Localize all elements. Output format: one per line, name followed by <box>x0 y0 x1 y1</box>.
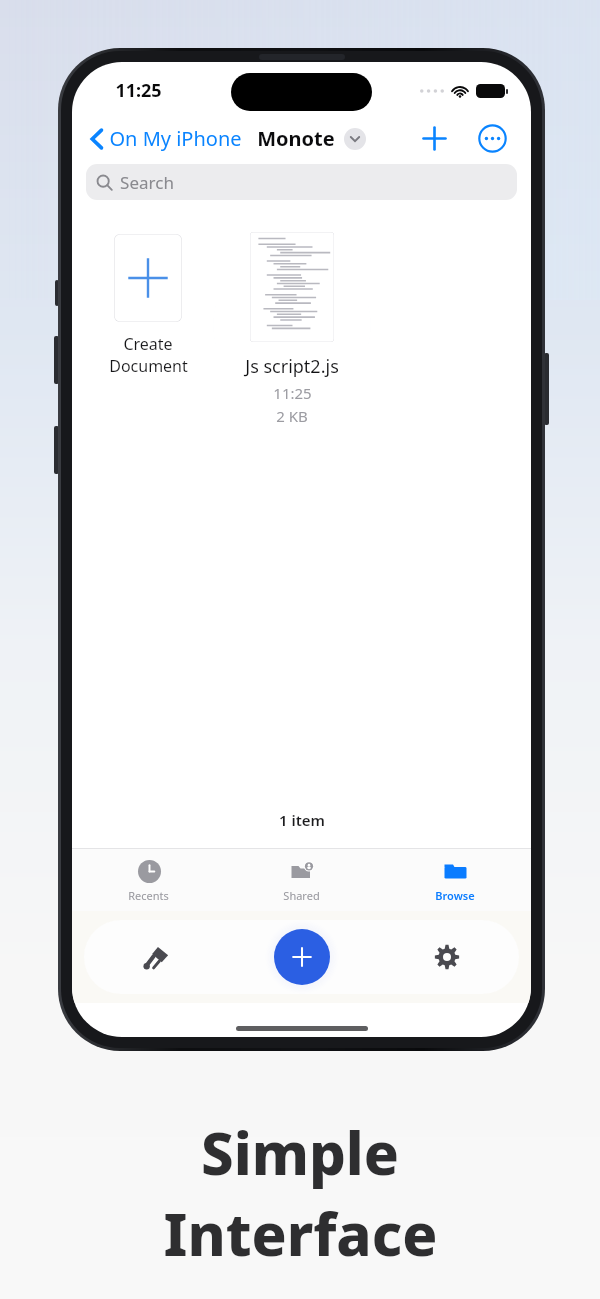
staticText: Browse <box>435 888 475 903</box>
staticText: Monote <box>257 125 335 152</box>
button[interactable]: Create <box>92 212 204 377</box>
button[interactable]: Brush tool <box>84 920 229 994</box>
staticText: 2 KB <box>276 406 308 426</box>
staticText: On My iPhone <box>109 125 242 152</box>
staticText: Document <box>109 355 188 377</box>
staticText: Simple <box>201 1113 399 1192</box>
staticText: Create <box>123 333 173 355</box>
button[interactable]: Add new <box>274 929 330 985</box>
staticText: 1 item <box>279 810 325 830</box>
button[interactable]: Add <box>413 117 455 159</box>
button[interactable]: Js script2.js <box>216 216 368 430</box>
button[interactable]: On My iPhone <box>84 121 248 156</box>
button[interactable]: Shared <box>225 849 378 911</box>
button[interactable]: Search <box>86 164 517 200</box>
button[interactable]: Monote <box>253 121 370 156</box>
button[interactable]: Recents <box>72 849 225 911</box>
staticText: Shared <box>283 888 320 903</box>
staticText: Search <box>120 171 174 194</box>
button[interactable]: More options <box>471 117 513 159</box>
button[interactable]: Settings <box>374 920 519 994</box>
staticText: Js script2.js <box>245 354 339 379</box>
staticText: Recents <box>128 888 169 903</box>
staticText: Interface <box>163 1194 438 1273</box>
staticText: 11:25 <box>273 383 312 403</box>
button[interactable]: Browse <box>378 849 531 911</box>
staticText: 11:25 <box>115 78 162 103</box>
